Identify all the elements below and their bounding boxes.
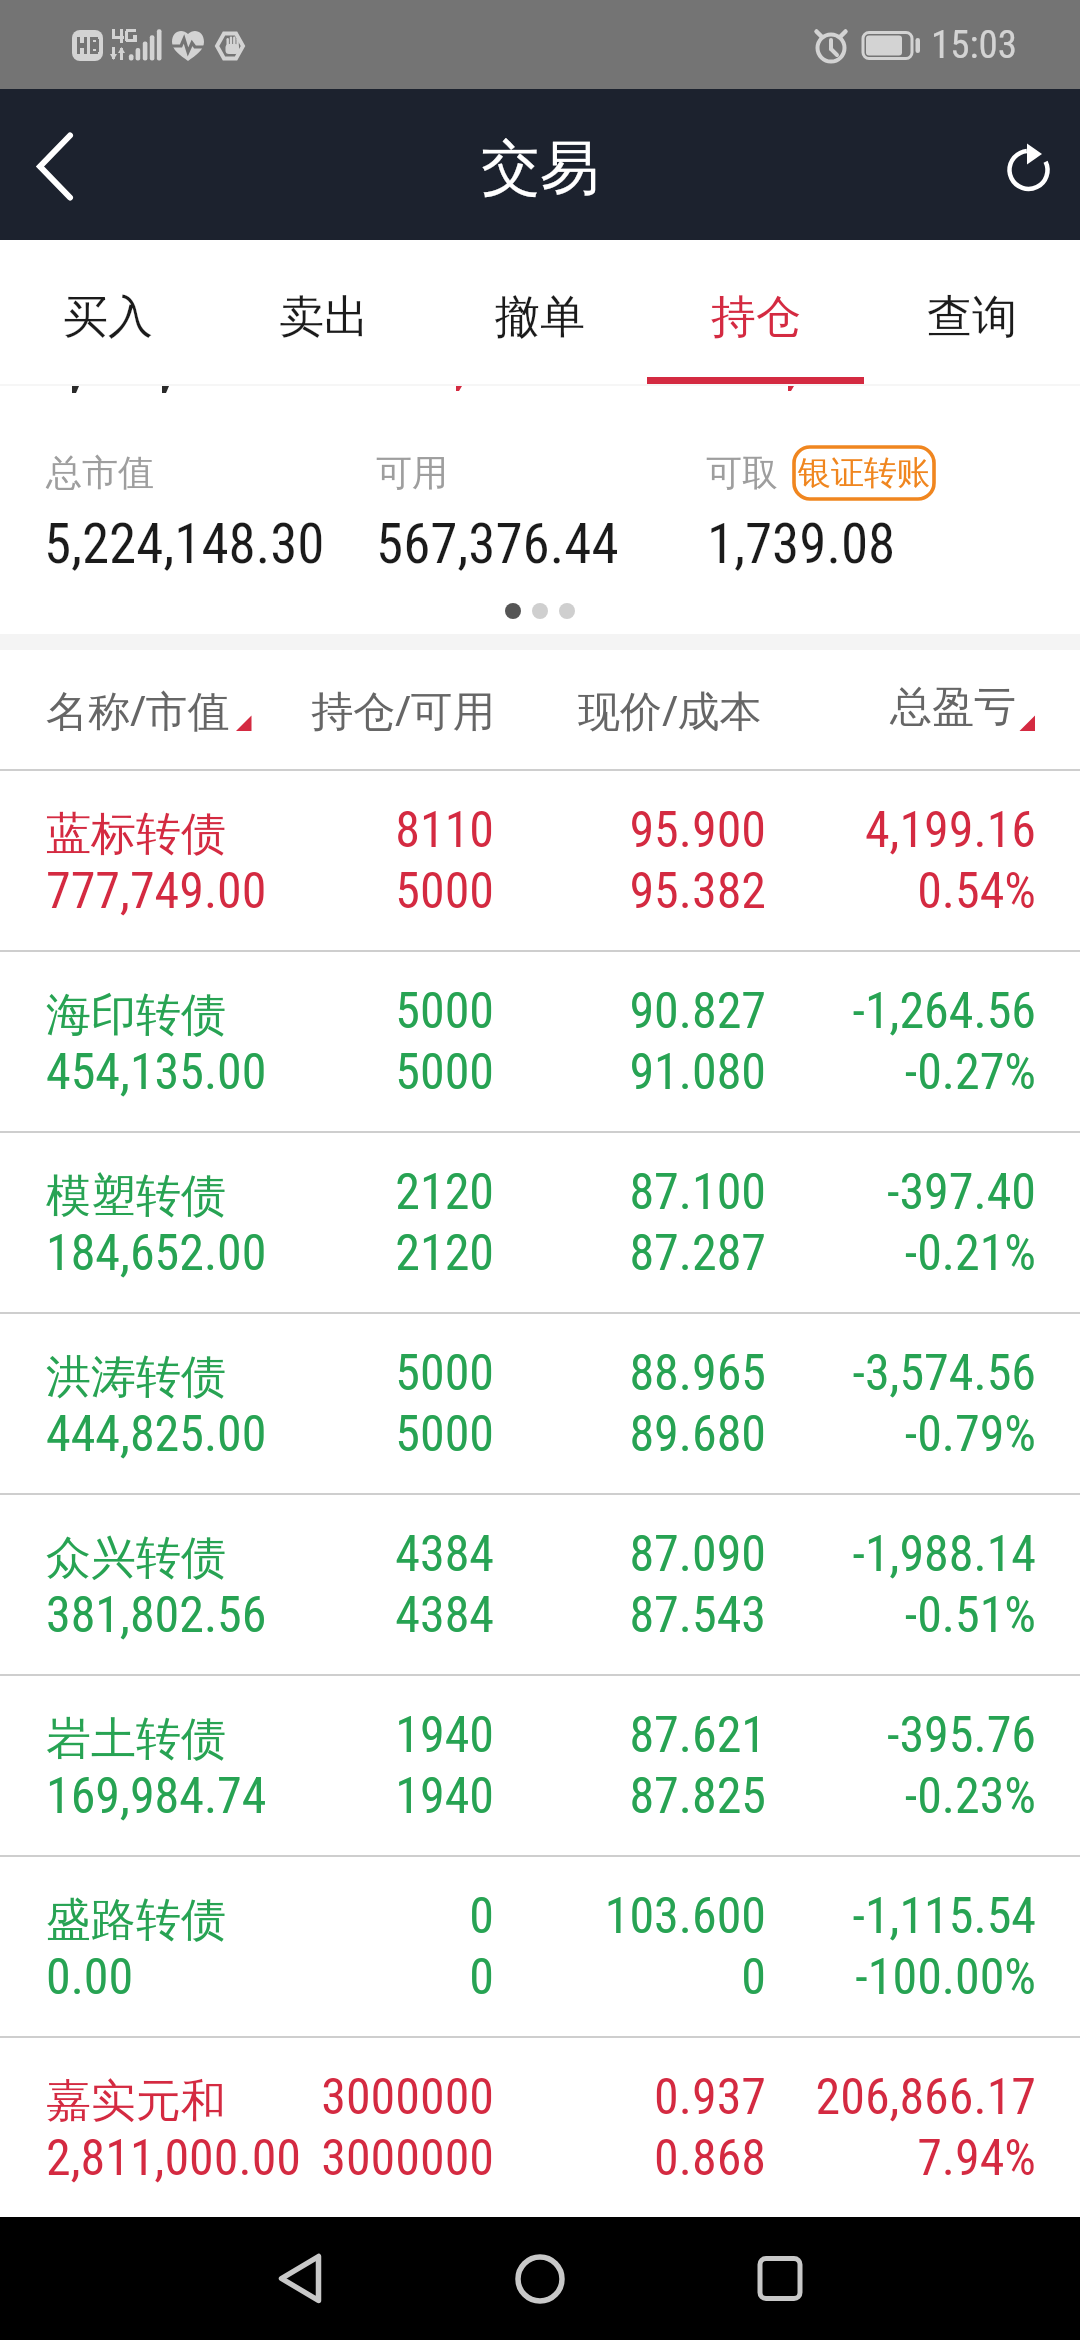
staticText: 岩土转债 [46, 1711, 226, 1768]
staticText: -1,988.14 [0, 1525, 1036, 1584]
staticText: 381,802.56 [46, 1586, 267, 1645]
staticText: 777,749.00 [46, 862, 267, 921]
staticText: 95.382 [0, 862, 766, 921]
staticText: -0.51% [0, 1586, 1036, 1645]
staticText: 银证转账 [798, 452, 930, 494]
staticText: 87.100 [0, 1163, 766, 1222]
staticText: 查询 [927, 289, 1017, 346]
staticText: 4,199.16 [0, 801, 1036, 860]
staticText: -0.27% [0, 1043, 1036, 1102]
staticText: 87.543 [0, 1586, 766, 1645]
staticText: 4384 [0, 1525, 494, 1584]
button[interactable]: 银证转账 [792, 445, 936, 501]
staticText: 87.621 [0, 1706, 766, 1765]
staticText: 可用 [376, 450, 448, 495]
staticText: 0 [0, 1887, 494, 1946]
button[interactable]: 盛路转债 [0, 1857, 1080, 2036]
staticText: 交易 [481, 131, 599, 205]
staticText: 卖出 [279, 289, 369, 346]
staticText: 现价/成本 [578, 681, 762, 738]
staticText: 5000 [0, 982, 494, 1041]
staticText: -397.40 [0, 1163, 1036, 1222]
staticText: 87.090 [0, 1525, 766, 1584]
staticText: 2120 [0, 1224, 494, 1283]
button[interactable]: Home [479, 2217, 599, 2340]
staticText: 454,135.00 [46, 1043, 267, 1102]
staticText: -1,115.54 [0, 1887, 1036, 1946]
staticText: 1940 [0, 1706, 494, 1765]
staticText: 5000 [0, 862, 494, 921]
staticText: 5,224,148.30 [44, 512, 325, 576]
button[interactable]: 海印转债 [0, 952, 1080, 1131]
staticText: 95.900 [0, 801, 766, 860]
staticText: 1,739.08 [707, 512, 896, 576]
staticText: -395.76 [0, 1706, 1036, 1765]
staticText: 2120 [0, 1163, 494, 1222]
staticText: 0.868 [0, 2129, 766, 2188]
staticText: 1940 [0, 1767, 494, 1826]
button[interactable]: Back [0, 89, 136, 240]
button[interactable]: 持仓 [648, 240, 864, 388]
button[interactable]: 卖出 [216, 240, 432, 388]
button[interactable]: 撤单 [432, 240, 648, 388]
staticText: 88.965 [0, 1344, 766, 1403]
staticText: 8110 [0, 801, 494, 860]
staticText: 5000 [0, 1043, 494, 1102]
button[interactable]: 众兴转债 [0, 1495, 1080, 1674]
staticText: 海印转债 [46, 987, 226, 1044]
staticText: 0.54% [0, 862, 1036, 921]
staticText: -0.79% [0, 1405, 1036, 1464]
button[interactable]: 岩土转债 [0, 1676, 1080, 1855]
button[interactable]: 模塑转债 [0, 1133, 1080, 1312]
button[interactable]: Back [240, 2217, 360, 2340]
staticText: 444,825.00 [46, 1405, 267, 1464]
staticText: 91.080 [0, 1043, 766, 1102]
staticText: 买入 [63, 289, 153, 346]
staticText: 盛路转债 [46, 1892, 226, 1949]
button[interactable]: 买入 [0, 240, 216, 388]
staticText: 103.600 [0, 1887, 766, 1946]
staticText: -100.00% [0, 1948, 1036, 2007]
staticText: -3,574.56 [0, 1344, 1036, 1403]
button[interactable]: 洪涛转债 [0, 1314, 1080, 1493]
staticText: 众兴转债 [46, 1530, 226, 1587]
button[interactable]: 查询 [864, 240, 1080, 388]
staticText: 0 [0, 1948, 494, 2007]
staticText: 撤单 [495, 289, 585, 346]
staticText: 名称/市值 [46, 681, 230, 738]
button[interactable]: 嘉实元和 [0, 2038, 1080, 2217]
staticText: 15:03 [931, 22, 1018, 68]
staticText: 5000 [0, 1405, 494, 1464]
staticText: 4384 [0, 1586, 494, 1645]
staticText: 总市值 [46, 450, 154, 495]
staticText: 206,866.17 [0, 2068, 1036, 2127]
staticText: 0.00 [46, 1948, 134, 2007]
button[interactable]: 名称/市值 [0, 650, 1080, 769]
staticText: 0.937 [0, 2068, 766, 2127]
button[interactable]: Recent apps [720, 2217, 840, 2340]
staticText: 87.287 [0, 1224, 766, 1283]
button[interactable]: 蓝标转债 [0, 771, 1080, 950]
staticText: 嘉实元和 [46, 2073, 226, 2130]
staticText: 总盈亏 [890, 681, 1016, 734]
staticText: 89.680 [0, 1405, 766, 1464]
staticText: 3000000 [0, 2129, 494, 2188]
staticText: 567,376.44 [376, 512, 619, 576]
staticText: 蓝标转债 [46, 806, 226, 863]
staticText: 3000000 [0, 2068, 494, 2127]
staticText: 持仓 [711, 289, 801, 346]
staticText: 2,811,000.00 [46, 2129, 302, 2188]
staticText: -0.23% [0, 1767, 1036, 1826]
staticText: 169,984.74 [46, 1767, 267, 1826]
staticText: 0 [0, 1948, 766, 2007]
button[interactable]: Refresh [970, 89, 1080, 240]
staticText: -1,264.56 [0, 982, 1036, 1041]
staticText: 184,652.00 [46, 1224, 267, 1283]
staticText: 7.94% [0, 2129, 1036, 2188]
staticText: 模塑转债 [46, 1168, 226, 1225]
staticText: 5000 [0, 1344, 494, 1403]
staticText: 90.827 [0, 982, 766, 1041]
staticText: 可取 [706, 450, 778, 495]
staticText: -0.21% [0, 1224, 1036, 1283]
staticText: 87.825 [0, 1767, 766, 1826]
